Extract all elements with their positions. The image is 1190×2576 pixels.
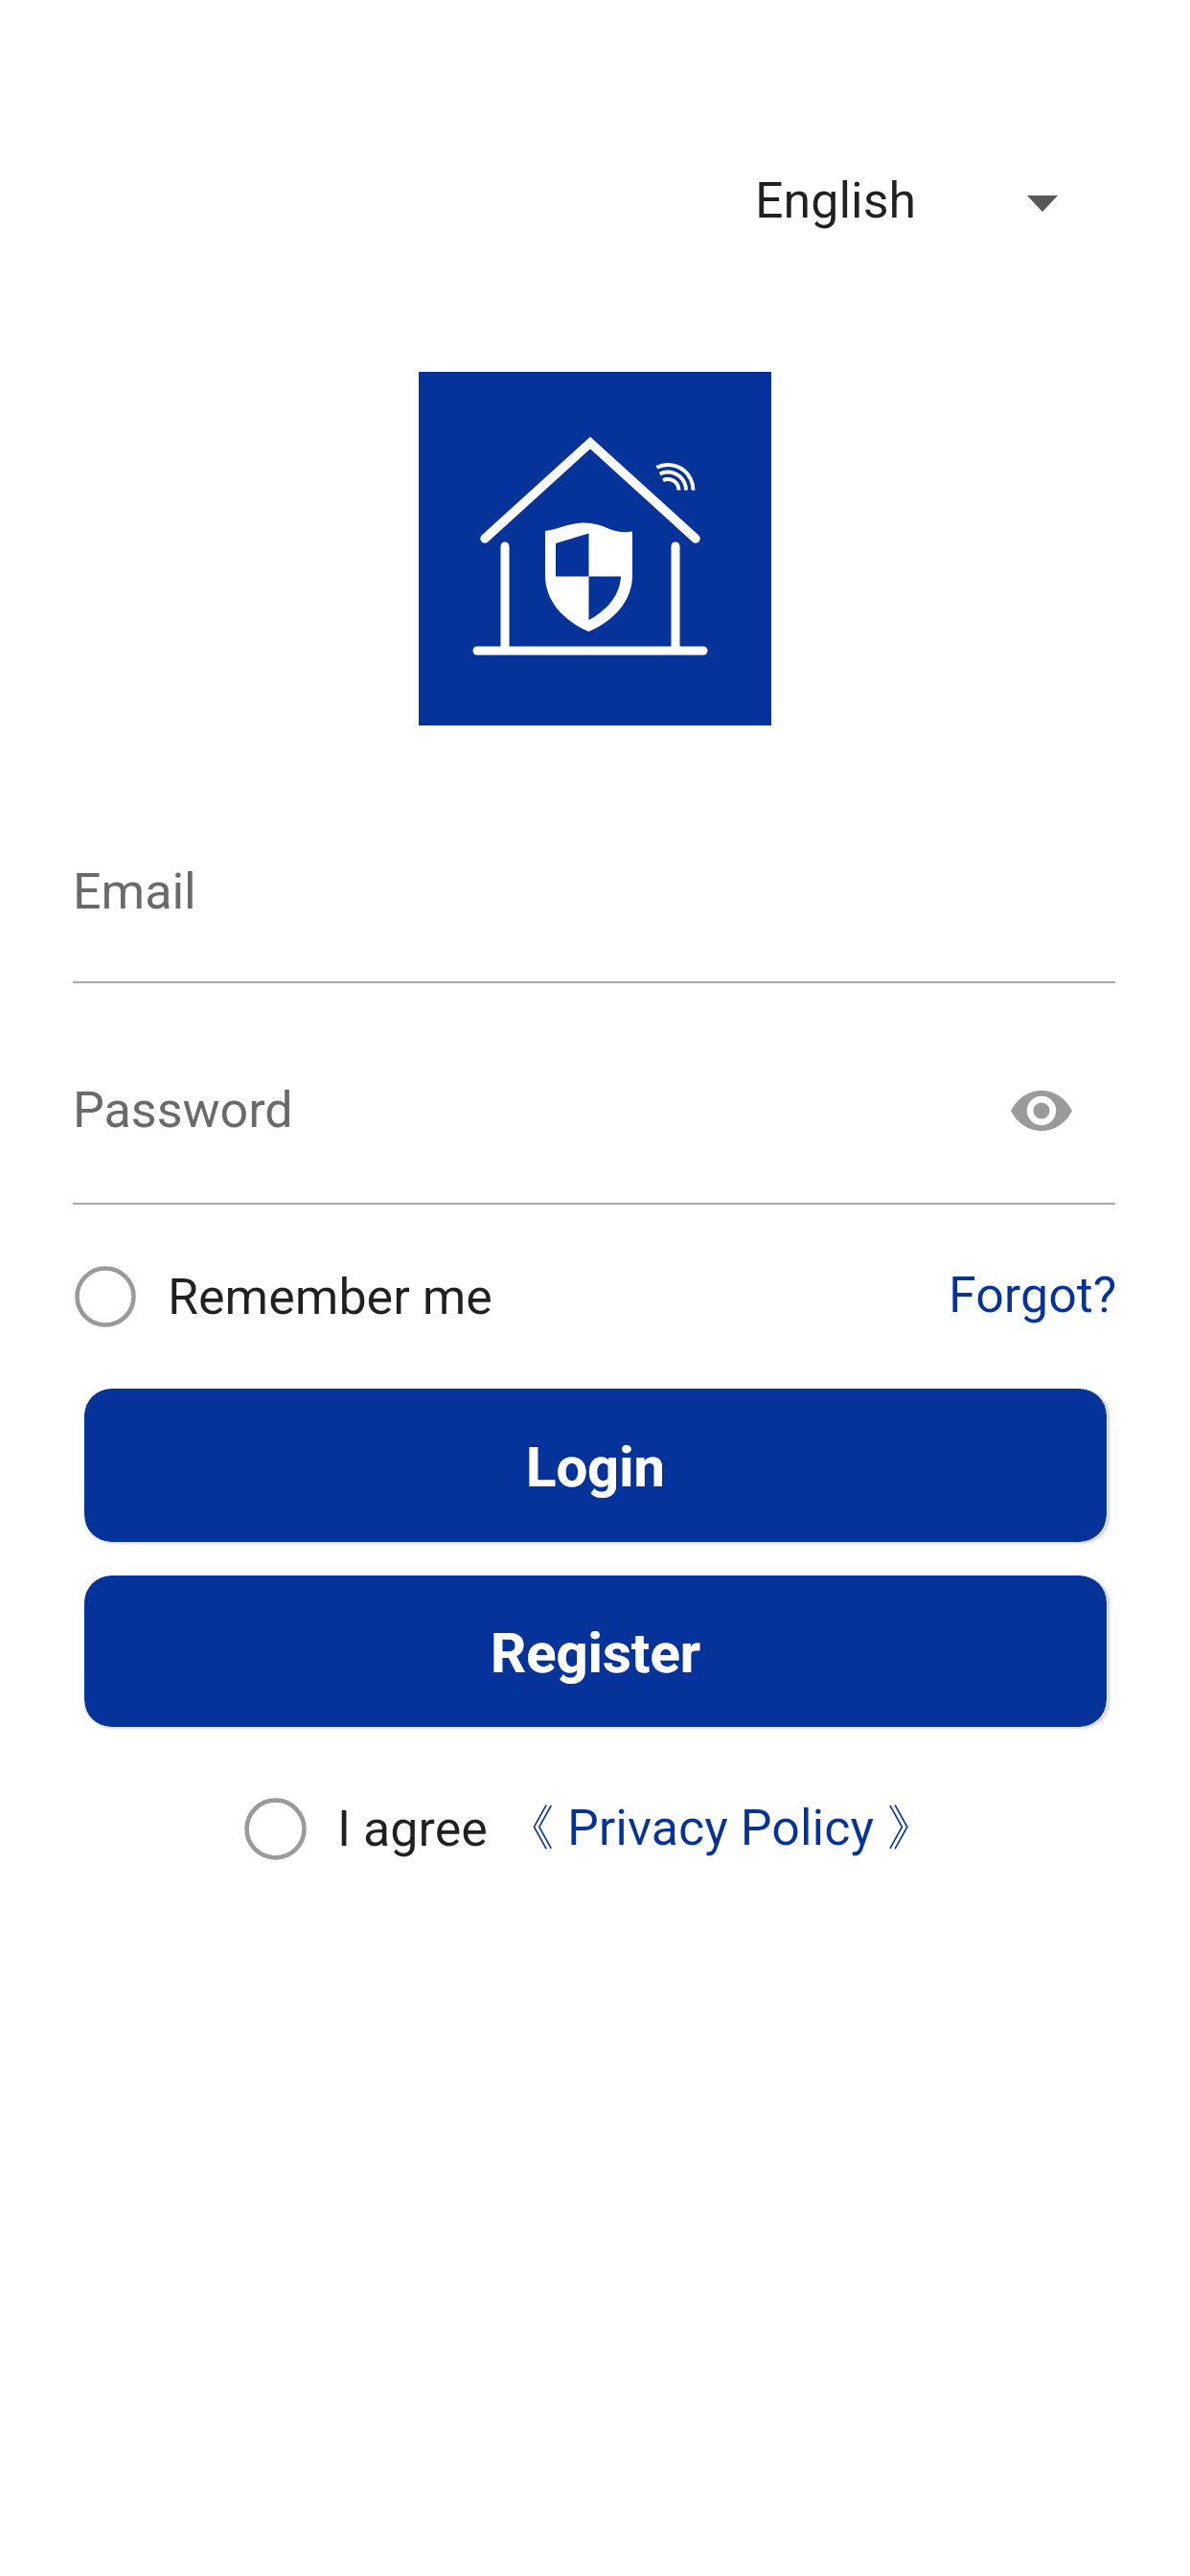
- other: Smart home security logo: [419, 372, 771, 725]
- staticText: Register: [491, 1621, 700, 1686]
- staticText: Remember me: [168, 1268, 492, 1326]
- button[interactable]: Forgot?: [931, 1258, 1134, 1332]
- button[interactable]: Register: [84, 1575, 1107, 1727]
- other: Change language: [1027, 195, 1058, 212]
- button[interactable]: English: [732, 156, 1169, 245]
- staticText: I agree: [337, 1800, 488, 1858]
- staticText: Email: [73, 862, 196, 921]
- button[interactable]: I agree: [237, 1790, 495, 1868]
- staticText: Login: [526, 1435, 666, 1500]
- button[interactable]: 《 Privacy Policy 》: [505, 1789, 936, 1868]
- button[interactable]: Show password: [1003, 1072, 1080, 1149]
- button[interactable]: Remember me: [67, 1258, 508, 1335]
- staticText: Password: [73, 1081, 293, 1139]
- button[interactable]: Login: [84, 1389, 1107, 1542]
- staticText: English: [755, 172, 917, 230]
